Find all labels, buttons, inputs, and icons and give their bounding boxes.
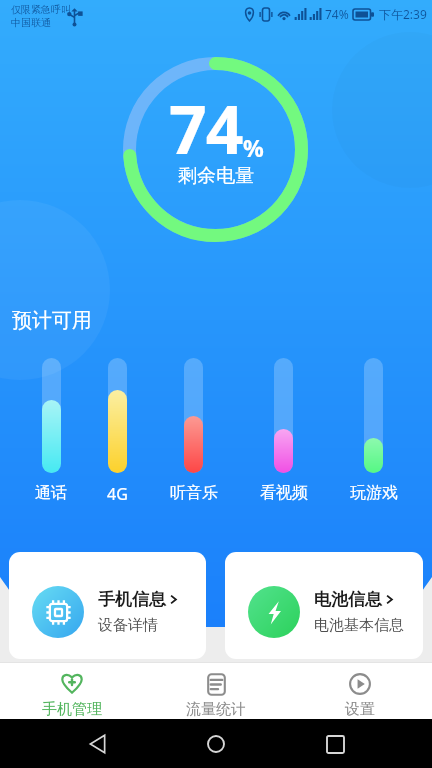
button[interactable]: Back [75, 722, 119, 766]
staticText: 电池信息 [314, 589, 382, 610]
staticText: 设置 [345, 700, 375, 719]
button[interactable]: 电池信息 [225, 552, 423, 659]
staticText: 74% [325, 6, 349, 22]
staticText: % [243, 132, 264, 163]
staticText: 中国联通 [11, 16, 51, 29]
staticText: 剩余电量 [178, 164, 254, 188]
button[interactable]: 手机管理 [0, 662, 144, 719]
staticText: 手机管理 [42, 700, 102, 719]
staticText: 玩游戏 [350, 483, 398, 503]
button[interactable]: 设置 [288, 662, 432, 719]
staticText: 预计可用 [12, 308, 92, 333]
staticText: 4G [107, 483, 128, 505]
staticText: 听音乐 [170, 483, 218, 503]
staticText: 手机信息 [98, 589, 166, 610]
staticText: 看视频 [260, 483, 308, 503]
staticText: 流量统计 [186, 700, 246, 719]
button[interactable]: 流量统计 [144, 662, 288, 719]
staticText: 下午2:39 [379, 6, 427, 22]
staticText: 仅限紧急呼叫 [11, 3, 71, 16]
button[interactable]: Recents [313, 722, 357, 766]
button[interactable]: 手机信息 [9, 552, 206, 659]
staticText: 电池基本信息 [314, 616, 404, 635]
staticText: 74 [169, 83, 243, 173]
staticText: 设备详情 [98, 616, 158, 635]
button[interactable]: Home [194, 722, 238, 766]
staticText: 通话 [35, 483, 67, 503]
